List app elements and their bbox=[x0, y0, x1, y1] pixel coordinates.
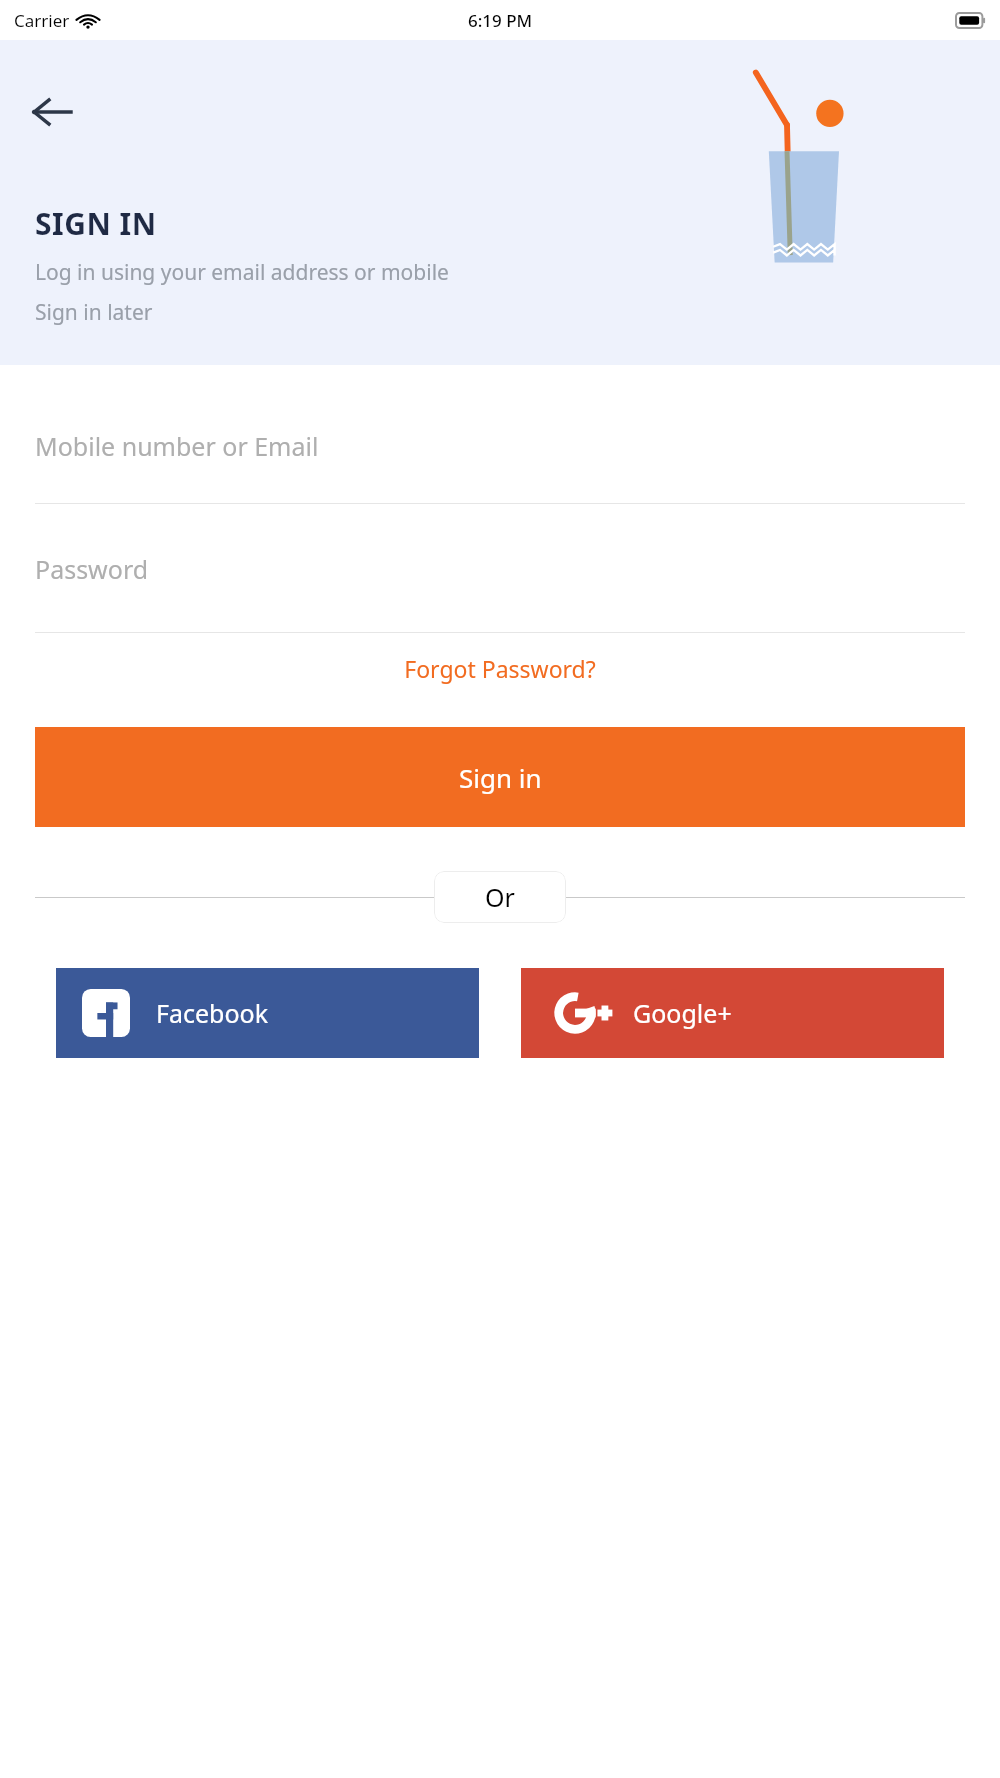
button[interactable]: Mobile number or Email bbox=[35, 387, 965, 504]
button[interactable]: Back bbox=[20, 80, 84, 144]
staticText: Mobile number or Email bbox=[35, 429, 319, 463]
staticText: SIGN IN bbox=[35, 203, 157, 244]
button[interactable]: Sign in later bbox=[35, 298, 153, 327]
staticText: Password bbox=[35, 552, 149, 586]
staticText: Facebook bbox=[156, 996, 269, 1030]
button[interactable]: Sign in bbox=[35, 727, 965, 827]
staticText: Sign in bbox=[459, 760, 542, 795]
button[interactable]: Facebook bbox=[56, 968, 479, 1058]
button[interactable]: Google+ bbox=[521, 968, 944, 1058]
button[interactable]: Forgot Password? bbox=[392, 647, 608, 690]
staticText: 6:19 PM bbox=[468, 9, 533, 32]
staticText: Or bbox=[485, 880, 515, 914]
button[interactable]: Password bbox=[35, 504, 965, 633]
staticText: Google+ bbox=[633, 996, 732, 1030]
staticText: Carrier bbox=[14, 9, 70, 32]
staticText: Log in using your email address or mobil… bbox=[35, 258, 449, 287]
